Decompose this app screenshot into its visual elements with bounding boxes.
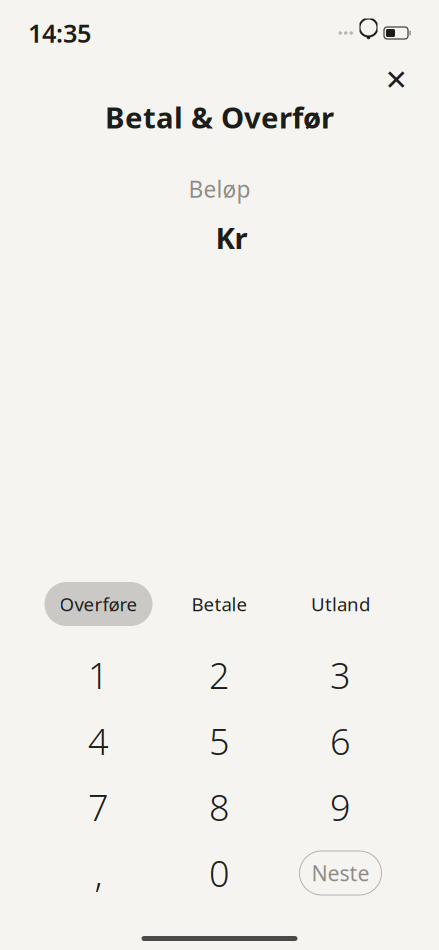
button[interactable]: Utland — [286, 582, 394, 626]
staticText: Neste — [311, 859, 369, 887]
staticText: Overføre — [59, 592, 137, 616]
button[interactable]: Lukk — [375, 59, 417, 101]
button[interactable]: 7 — [38, 774, 159, 840]
staticText: 1 — [88, 651, 109, 699]
staticText: 5 — [209, 717, 230, 765]
button[interactable]: Betale — [165, 582, 273, 626]
staticText: 14:35 — [28, 16, 91, 50]
button[interactable]: Neste — [299, 851, 381, 895]
staticText: Betale — [191, 592, 247, 616]
staticText: 0 — [209, 849, 230, 897]
button[interactable]: 6 — [280, 708, 401, 774]
button[interactable]: 9 — [280, 774, 401, 840]
button[interactable]: 2 — [159, 642, 280, 708]
staticText: 7 — [88, 783, 109, 831]
button[interactable]: 5 — [159, 708, 280, 774]
staticText: 4 — [88, 717, 109, 765]
staticText: 8 — [209, 783, 230, 831]
button[interactable]: 0 — [159, 840, 280, 906]
button[interactable]: 3 — [280, 642, 401, 708]
staticText: Beløp — [188, 174, 250, 204]
staticText: Betal & Overfør — [105, 97, 334, 136]
staticText: Kr — [215, 218, 247, 257]
button[interactable]: 8 — [159, 774, 280, 840]
staticText: Utland — [311, 592, 370, 616]
button[interactable]: 1 — [38, 642, 159, 708]
staticText: , — [94, 849, 102, 897]
button[interactable]: , — [38, 840, 159, 906]
staticText: 9 — [330, 783, 351, 831]
staticText: ✕ — [384, 64, 407, 96]
staticText: 6 — [330, 717, 351, 765]
button[interactable]: Overføre — [44, 582, 152, 626]
button[interactable]: 4 — [38, 708, 159, 774]
staticText: 2 — [209, 651, 230, 699]
staticText: 3 — [330, 651, 351, 699]
